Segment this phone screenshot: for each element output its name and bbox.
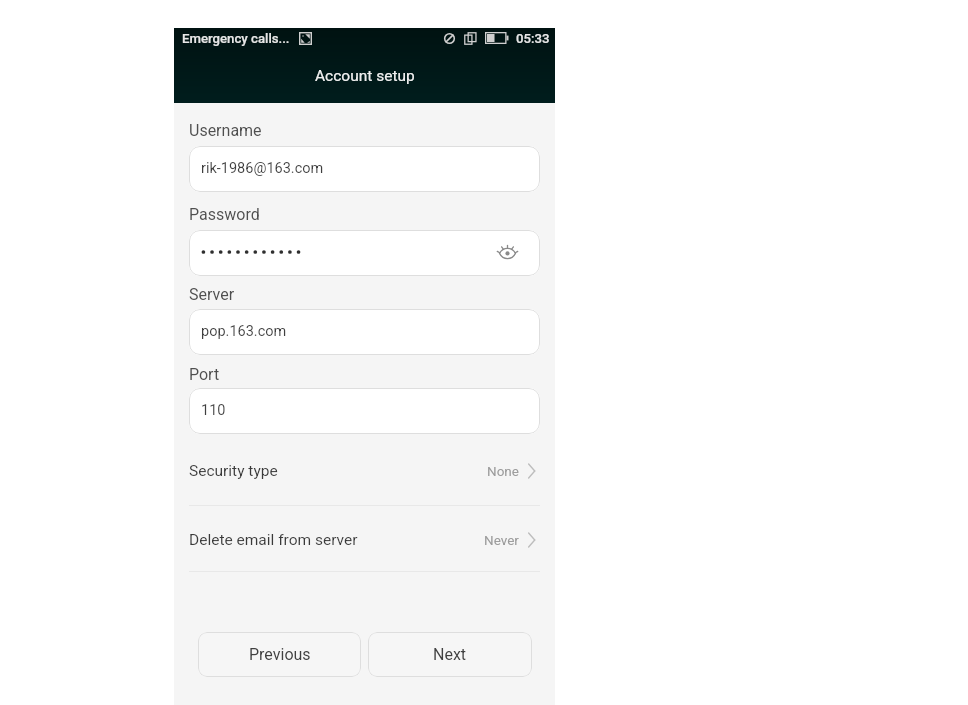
staticText: Account setup	[315, 67, 415, 85]
staticText: pop.163.com	[201, 323, 287, 340]
button[interactable]: Previous	[198, 632, 361, 677]
button[interactable]: Next	[368, 632, 532, 677]
button[interactable]: Show password	[189, 230, 540, 276]
staticText: None	[487, 463, 519, 479]
staticText: Delete email from server	[189, 531, 358, 549]
staticText: 05:33	[516, 31, 550, 46]
staticText: Password	[189, 205, 260, 224]
button[interactable]: Show password	[492, 236, 522, 266]
staticText: Previous	[249, 645, 311, 664]
staticText: Next	[433, 645, 467, 664]
staticText: rik-1986@163.com	[201, 160, 324, 177]
button[interactable]: rik-1986@163.com	[189, 146, 540, 192]
staticText: Server	[189, 285, 235, 304]
staticText: Never	[484, 532, 519, 548]
staticText: Emergency calls...	[182, 31, 290, 46]
button[interactable]: 110	[189, 388, 540, 434]
staticText: 110	[201, 402, 226, 419]
button[interactable]: pop.163.com	[189, 309, 540, 355]
staticText: Username	[189, 121, 262, 140]
button[interactable]: Delete email from server	[189, 507, 540, 573]
button[interactable]: Security type	[189, 438, 540, 504]
staticText: Port	[189, 365, 220, 384]
staticText: Security type	[189, 462, 278, 480]
